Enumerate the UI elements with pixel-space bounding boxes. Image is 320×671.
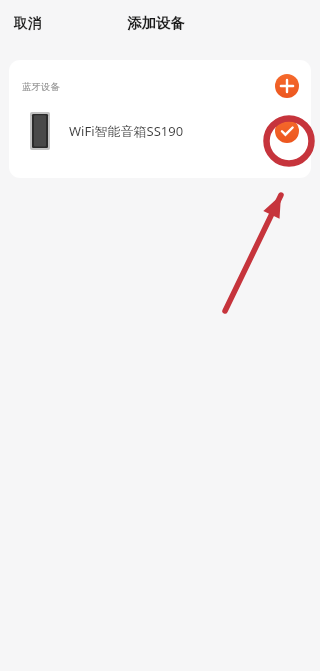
button[interactable]: 已选择该设备 <box>275 119 299 143</box>
staticText: 取消 <box>14 15 41 32</box>
button[interactable]: 取消 <box>4 8 51 39</box>
button[interactable]: WiFi智能音箱SS190 <box>9 102 311 160</box>
button[interactable]: 添加设备 <box>275 74 299 98</box>
staticText: 蓝牙设备 <box>22 81 60 93</box>
staticText: 添加设备 <box>127 14 185 32</box>
staticText: WiFi智能音箱SS190 <box>69 122 184 140</box>
